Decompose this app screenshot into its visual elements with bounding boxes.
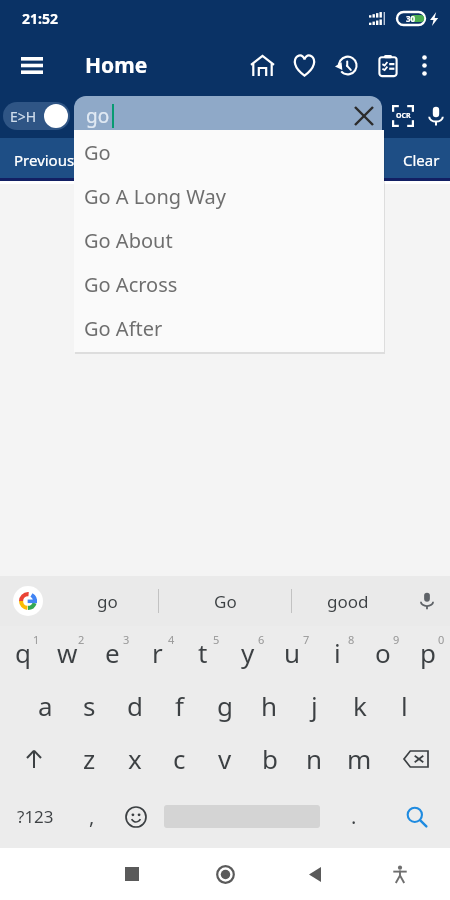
button[interactable]: n	[292, 732, 337, 785]
staticText: OCR	[396, 111, 411, 121]
staticText: g	[217, 688, 233, 723]
staticText: d	[127, 688, 143, 723]
button[interactable]: ,	[70, 785, 114, 848]
staticText: m	[347, 741, 372, 776]
button[interactable]: Accessibility	[368, 848, 432, 900]
button[interactable]: Favorites	[283, 36, 325, 94]
button[interactable]: g	[202, 679, 247, 732]
button[interactable]: Go A Long Way	[74, 174, 384, 218]
button[interactable]: More options	[409, 36, 439, 94]
button[interactable]: go	[56, 576, 158, 626]
button[interactable]: j	[292, 679, 337, 732]
button[interactable]: q	[0, 626, 45, 679]
button[interactable]: Home	[241, 36, 283, 94]
staticText: h	[261, 688, 278, 723]
button[interactable]: x	[112, 732, 157, 785]
button[interactable]: Voice input	[404, 576, 450, 626]
button[interactable]: Back	[283, 848, 347, 900]
button[interactable]: b	[247, 732, 292, 785]
staticText: 30	[406, 13, 416, 24]
button[interactable]: History	[325, 36, 367, 94]
staticText: l	[401, 688, 408, 723]
staticText: Go	[84, 139, 111, 166]
staticText: f	[175, 688, 184, 723]
button[interactable]: z	[67, 732, 112, 785]
button[interactable]: f	[157, 679, 202, 732]
button[interactable]: .	[326, 785, 382, 848]
button[interactable]: Go	[159, 576, 291, 626]
button[interactable]: ?123	[0, 785, 70, 848]
button[interactable]: Scan text	[382, 94, 423, 138]
staticText: Go Across	[84, 271, 178, 298]
button[interactable]: m	[337, 732, 382, 785]
staticText: good	[327, 590, 369, 613]
staticText: s	[83, 688, 96, 723]
staticText: i	[334, 635, 341, 670]
button[interactable]: Clipboard	[367, 36, 409, 94]
button[interactable]: Backspace	[382, 732, 450, 785]
button[interactable]: Clear text	[347, 99, 381, 133]
staticText: go	[97, 590, 118, 613]
button[interactable]: Google	[13, 586, 43, 616]
staticText: 7	[303, 632, 310, 647]
staticText: 0	[438, 632, 445, 647]
button[interactable]: Menu	[0, 36, 64, 94]
button[interactable]: good	[292, 576, 404, 626]
button[interactable]: Emoji	[114, 785, 158, 848]
button[interactable]: Search	[382, 785, 450, 848]
button[interactable]: Voice search	[423, 94, 449, 138]
staticText: n	[306, 741, 323, 776]
staticText: 9	[393, 632, 400, 647]
button[interactable]: r	[135, 626, 180, 679]
button[interactable]: Home	[193, 848, 257, 900]
staticText: 8	[348, 632, 355, 647]
button[interactable]: Go	[74, 130, 384, 174]
staticText: .	[351, 803, 357, 830]
staticText: ?123	[17, 805, 54, 828]
staticText: u	[284, 635, 301, 670]
button[interactable]: Space	[158, 785, 326, 848]
button[interactable]: t	[180, 626, 225, 679]
staticText: 3	[123, 632, 130, 647]
staticText: Go About	[84, 227, 173, 254]
button[interactable]: c	[157, 732, 202, 785]
button[interactable]: Go Across	[74, 262, 384, 306]
staticText: o	[375, 635, 391, 670]
staticText: E>H	[10, 107, 37, 126]
button[interactable]: Shift	[0, 732, 67, 785]
staticText: 2	[78, 632, 85, 647]
button[interactable]: E>H	[3, 102, 70, 130]
button[interactable]: y	[225, 626, 270, 679]
button[interactable]: Go About	[74, 218, 384, 262]
staticText: Home	[85, 51, 148, 80]
button[interactable]: Clear	[403, 150, 450, 170]
button[interactable]: i	[315, 626, 360, 679]
button[interactable]: l	[382, 679, 427, 732]
staticText: Go After	[84, 315, 163, 342]
button[interactable]: a	[23, 679, 67, 732]
staticText: y	[241, 635, 255, 670]
staticText: Go A Long Way	[84, 183, 226, 210]
button[interactable]: v	[202, 732, 247, 785]
button[interactable]: Recents	[100, 848, 164, 900]
button[interactable]: Go After	[74, 306, 384, 350]
button[interactable]: s	[67, 679, 112, 732]
button[interactable]: e	[90, 626, 135, 679]
staticText: z	[83, 741, 96, 776]
staticText: 1	[33, 632, 40, 647]
button[interactable]: Previous	[0, 150, 75, 170]
button[interactable]: p	[405, 626, 450, 679]
staticText: go	[86, 103, 110, 129]
staticText: e	[105, 635, 120, 670]
staticText: 21:52	[22, 9, 58, 28]
button[interactable]: o	[360, 626, 405, 679]
staticText: j	[311, 688, 318, 723]
staticText: c	[173, 741, 186, 776]
staticText: t	[198, 635, 208, 670]
button[interactable]: w	[45, 626, 90, 679]
button[interactable]: h	[247, 679, 292, 732]
button[interactable]: k	[337, 679, 382, 732]
button[interactable]: u	[270, 626, 315, 679]
button[interactable]: d	[112, 679, 157, 732]
staticText: b	[262, 741, 278, 776]
